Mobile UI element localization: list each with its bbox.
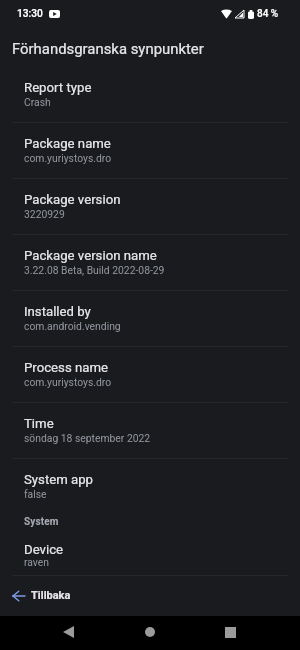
- staticText: 3220929: [24, 208, 65, 220]
- button[interactable]: Tillbaka: [0, 576, 300, 615]
- button[interactable]: Recent apps: [208, 616, 253, 650]
- staticText: Package version: [24, 192, 121, 207]
- button[interactable]: Device: [0, 529, 300, 576]
- button[interactable]: Package name: [0, 123, 300, 179]
- button[interactable]: Package version: [0, 179, 300, 235]
- staticText: com.android.vending: [24, 320, 121, 332]
- button[interactable]: Report type: [0, 67, 300, 123]
- staticText: com.yuriystoys.dro: [24, 376, 112, 388]
- staticText: false: [24, 488, 47, 500]
- staticText: com.yuriystoys.dro: [24, 152, 112, 164]
- staticText: Tillbaka: [31, 589, 71, 602]
- staticText: Time: [24, 416, 54, 431]
- staticText: System: [24, 516, 59, 528]
- staticText: Process name: [24, 360, 108, 375]
- button[interactable]: Time: [0, 403, 300, 459]
- staticText: Package version name: [24, 248, 157, 263]
- button[interactable]: Home: [127, 616, 172, 650]
- staticText: Crash: [24, 96, 51, 108]
- staticText: 84 %: [257, 8, 279, 20]
- staticText: 3.22.08 Beta, Build 2022-08-29: [24, 264, 165, 276]
- button[interactable]: System app: [0, 459, 300, 515]
- staticText: System app: [24, 472, 94, 487]
- staticText: raven: [24, 556, 49, 568]
- button[interactable]: Installed by: [0, 291, 300, 347]
- staticText: Report type: [24, 80, 92, 95]
- staticText: Device: [24, 542, 64, 557]
- staticText: 13:30: [17, 8, 43, 20]
- button[interactable]: Package version name: [0, 235, 300, 291]
- button[interactable]: Process name: [0, 347, 300, 403]
- staticText: Installed by: [24, 304, 91, 319]
- staticText: söndag 18 september 2022: [24, 432, 151, 444]
- staticText: Package name: [24, 136, 111, 151]
- staticText: Förhandsgranska synpunkter: [12, 40, 204, 57]
- button[interactable]: Back: [46, 616, 91, 650]
